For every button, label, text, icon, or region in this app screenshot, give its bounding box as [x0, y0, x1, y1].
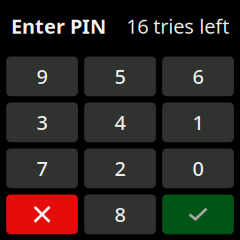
staticText: 0	[192, 155, 203, 182]
staticText: 1	[192, 109, 203, 136]
button[interactable]: 0	[162, 148, 234, 188]
staticText: 2	[115, 155, 126, 182]
button[interactable]: Cancel	[6, 194, 78, 234]
button[interactable]: 5	[84, 56, 156, 96]
staticText: 16 tries left	[126, 13, 229, 39]
button[interactable]: Confirm	[162, 194, 234, 234]
button[interactable]: 9	[6, 56, 78, 96]
staticText: 8	[115, 201, 126, 228]
button[interactable]: 8	[84, 194, 156, 234]
button[interactable]: 1	[162, 102, 234, 142]
staticText: 5	[115, 63, 126, 90]
button[interactable]: 3	[6, 102, 78, 142]
button[interactable]: 7	[6, 148, 78, 188]
staticText: 4	[115, 109, 126, 136]
staticText: 6	[192, 63, 203, 90]
staticText: Enter PIN	[11, 13, 106, 39]
staticText: 9	[37, 63, 48, 90]
staticText: 3	[37, 109, 48, 136]
button[interactable]: 6	[162, 56, 234, 96]
button[interactable]: 2	[84, 148, 156, 188]
staticText: 7	[37, 155, 48, 182]
button[interactable]: 4	[84, 102, 156, 142]
